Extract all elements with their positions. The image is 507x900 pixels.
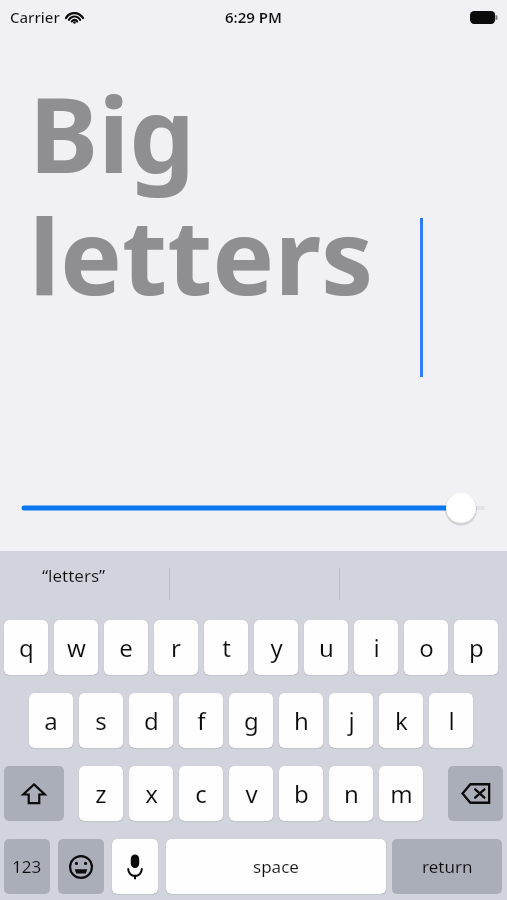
staticText: x	[145, 777, 158, 810]
button[interactable]: 123	[4, 839, 50, 894]
button[interactable]: j	[329, 693, 373, 748]
staticText: v	[245, 777, 258, 810]
staticText: h	[294, 704, 309, 737]
staticText: r	[171, 631, 181, 664]
staticText: Carrier	[10, 7, 60, 27]
button[interactable]: i	[354, 620, 398, 675]
button[interactable]: e	[104, 620, 148, 675]
staticText: w	[67, 631, 86, 664]
staticText: e	[119, 631, 133, 664]
button[interactable]: Emoji	[58, 839, 104, 894]
staticText: t	[222, 631, 231, 664]
staticText: a	[44, 704, 58, 737]
button[interactable]: a	[29, 693, 73, 748]
button[interactable]: Font size slider	[0, 478, 507, 538]
button[interactable]: n	[329, 766, 373, 821]
button[interactable]: v	[229, 766, 273, 821]
staticText: 6:29 PM	[225, 7, 282, 27]
staticText: d	[144, 704, 159, 737]
button[interactable]: r	[154, 620, 198, 675]
button[interactable]: z	[79, 766, 123, 821]
button[interactable]: Backspace	[448, 766, 503, 821]
staticText: c	[195, 777, 207, 810]
staticText: return	[422, 855, 473, 878]
staticText: z	[95, 777, 107, 810]
staticText: b	[294, 777, 309, 810]
button[interactable]: k	[379, 693, 423, 748]
staticText: p	[469, 631, 484, 664]
staticText: Big letters	[29, 62, 374, 325]
button[interactable]: “letters”	[42, 564, 106, 587]
staticText: s	[95, 704, 107, 737]
staticText: j	[348, 704, 355, 737]
staticText: o	[419, 631, 434, 664]
button[interactable]: t	[204, 620, 248, 675]
button[interactable]: g	[229, 693, 273, 748]
staticText: u	[319, 631, 334, 664]
staticText: m	[390, 777, 413, 810]
staticText: space	[253, 855, 299, 878]
button[interactable]: Big letters	[0, 34, 507, 454]
button[interactable]: h	[279, 693, 323, 748]
button[interactable]: f	[179, 693, 223, 748]
button[interactable]: l	[429, 693, 473, 748]
button[interactable]: m	[379, 766, 423, 821]
staticText: g	[244, 704, 259, 737]
button[interactable]: w	[54, 620, 98, 675]
staticText: n	[344, 777, 359, 810]
staticText: k	[395, 704, 408, 737]
staticText: l	[448, 704, 455, 737]
staticText: 123	[12, 855, 42, 878]
button[interactable]: b	[279, 766, 323, 821]
button[interactable]: Dictation	[112, 839, 158, 894]
staticText: q	[19, 631, 34, 664]
button[interactable]: d	[129, 693, 173, 748]
button[interactable]: x	[129, 766, 173, 821]
button[interactable]: o	[404, 620, 448, 675]
staticText: f	[197, 704, 206, 737]
staticText: y	[270, 631, 283, 664]
button[interactable]: s	[79, 693, 123, 748]
button[interactable]: u	[304, 620, 348, 675]
button[interactable]: q	[4, 620, 48, 675]
button[interactable]: return	[392, 839, 502, 894]
button[interactable]: Shift	[4, 766, 64, 821]
staticText: i	[373, 631, 380, 664]
button[interactable]: c	[179, 766, 223, 821]
button[interactable]: p	[454, 620, 498, 675]
button[interactable]: y	[254, 620, 298, 675]
button[interactable]: space	[166, 839, 386, 894]
